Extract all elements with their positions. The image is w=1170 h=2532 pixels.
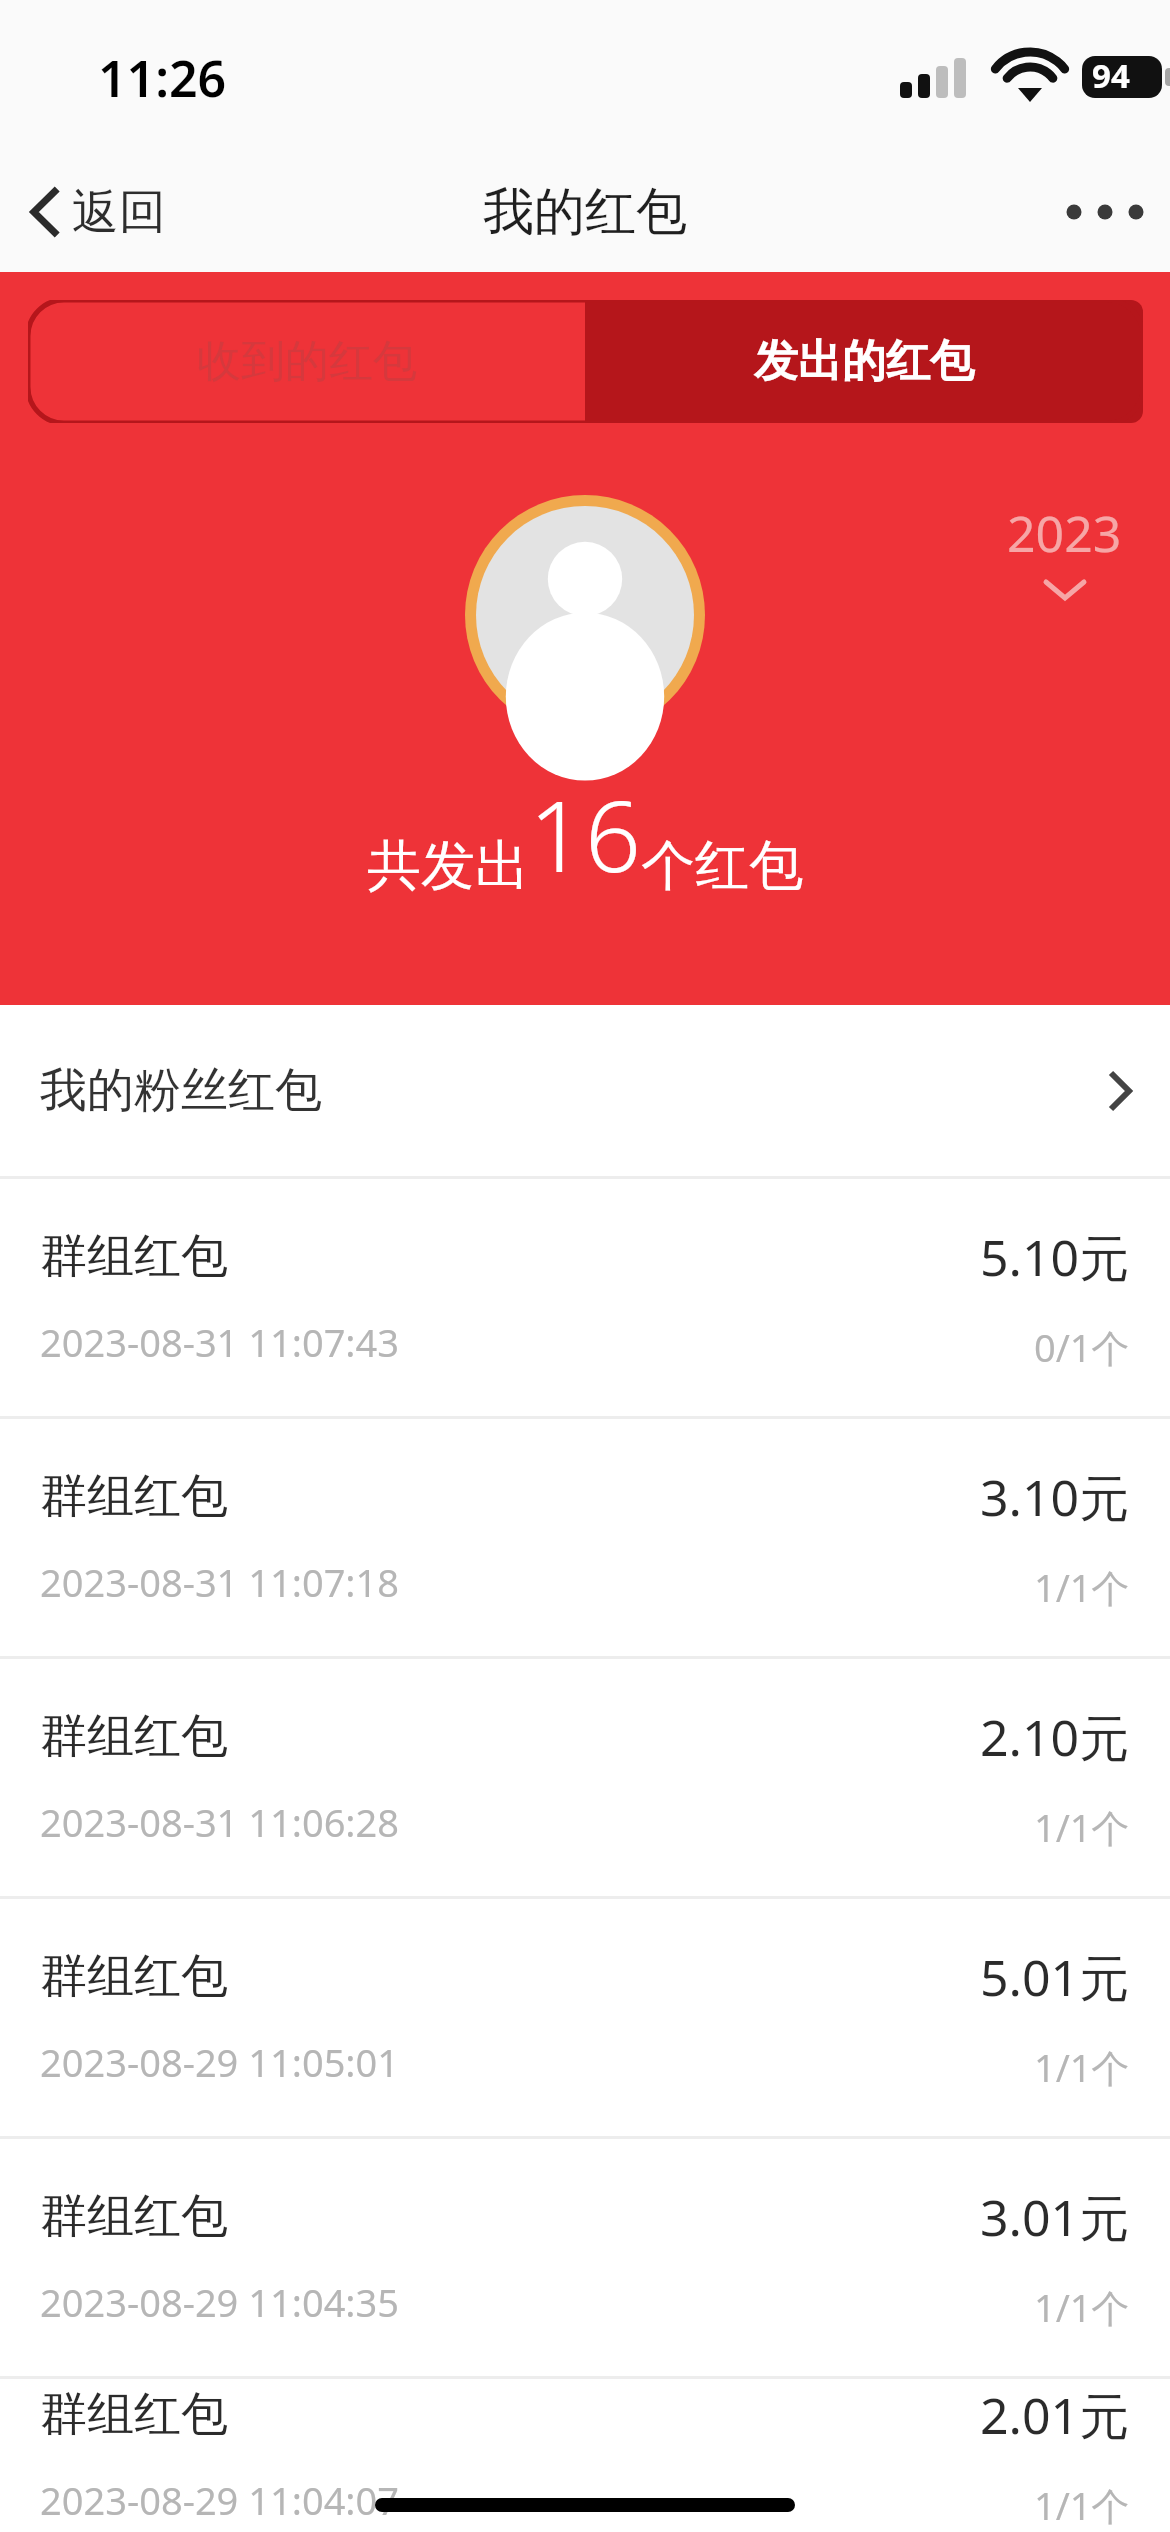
staticText: 群组红包 [40,1707,228,1766]
staticText: 2023-08-31 11:07:18 [40,1556,400,1608]
button[interactable]: 发出的红包 [585,300,1143,423]
staticText: 2.10元 [980,1703,1130,1771]
staticText: 3.10元 [980,1463,1130,1531]
button[interactable]: 返回 [0,152,200,272]
staticText: 11:26 [98,44,227,112]
staticText: 2.01元 [980,2381,1130,2449]
staticText: 16 [529,767,641,900]
staticText: 2023-08-31 11:07:43 [40,1316,400,1368]
staticText: 2023-08-29 11:04:07 [40,2474,400,2526]
staticText: 0/1个 [1034,1321,1130,1373]
button[interactable]: 群组红包 [0,1419,1170,1656]
button[interactable]: 群组红包 [0,1659,1170,1896]
button[interactable]: 2023 [995,487,1134,613]
staticText: 1/1个 [1034,1801,1130,1853]
staticText: 个红包 [641,832,803,900]
staticText: 群组红包 [40,2187,228,2246]
staticText: 群组红包 [40,1467,228,1526]
staticText: 2023-08-29 11:05:01 [40,2036,400,2088]
button[interactable]: 群组红包 [0,1179,1170,1416]
staticText: 5.01元 [980,1943,1130,2011]
button[interactable]: More options [1040,152,1170,272]
staticText: 3.01元 [980,2183,1130,2251]
button[interactable]: 群组红包 [0,1899,1170,2136]
staticText: 94 [1092,53,1130,98]
staticText: 共发出 [367,832,529,900]
staticText: 2023-08-31 11:06:28 [40,1796,400,1848]
staticText: 群组红包 [40,1947,228,2006]
staticText: 我的红包 [483,180,687,244]
staticText: 返回 [72,183,166,242]
staticText: 群组红包 [40,2385,228,2444]
staticText: 我的粉丝红包 [40,1061,322,1120]
staticText: 5.10元 [980,1223,1130,1291]
staticText: 2023 [1007,499,1122,567]
staticText: 收到的红包 [197,334,417,389]
staticText: 群组红包 [40,1227,228,1286]
staticText: 1/1个 [1034,1561,1130,1613]
staticText: 1/1个 [1034,2479,1130,2531]
button[interactable]: 我的粉丝红包 [0,1005,1170,1176]
staticText: 1/1个 [1034,2281,1130,2333]
staticText: 2023-08-29 11:04:35 [40,2276,400,2328]
staticText: 发出的红包 [754,334,974,389]
button[interactable]: 群组红包 [0,2379,1170,2532]
button[interactable]: 群组红包 [0,2139,1170,2376]
staticText: 1/1个 [1034,2041,1130,2093]
button[interactable]: 收到的红包 [28,300,585,423]
